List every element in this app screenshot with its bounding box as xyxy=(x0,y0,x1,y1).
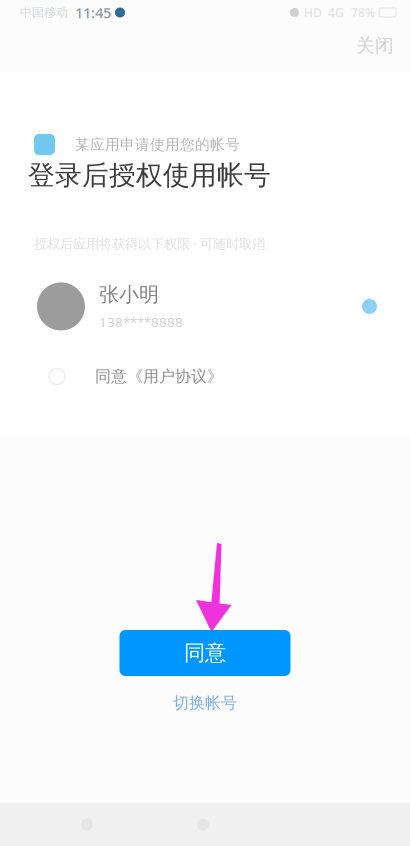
button[interactable]: 切换帐号 xyxy=(163,689,247,717)
staticText: 138****8888 xyxy=(99,313,183,331)
staticText: 中国移动 xyxy=(20,5,68,20)
button[interactable]: 同意《用户协议》 xyxy=(0,359,410,393)
staticText: 张小明 xyxy=(99,282,159,307)
staticText: 授权后应用将获得以下权限 · 可随时取消 xyxy=(34,235,265,252)
staticText: HD 4G xyxy=(304,4,344,20)
staticText: 登录后授权使用帐号 xyxy=(28,159,271,192)
button[interactable]: 同意 xyxy=(119,630,290,676)
staticText: 切换帐号 xyxy=(173,693,237,713)
button[interactable]: 张小明 xyxy=(0,275,410,337)
staticText: 同意 xyxy=(184,640,226,666)
staticText: 同意《用户协议》 xyxy=(95,367,223,386)
staticText: 某应用申请使用您的帐号 xyxy=(75,135,240,153)
staticText: 关闭 xyxy=(356,34,394,57)
button[interactable]: 关闭 xyxy=(347,29,403,62)
staticText: 78% xyxy=(351,4,375,20)
staticText: 11:45 xyxy=(75,3,111,22)
